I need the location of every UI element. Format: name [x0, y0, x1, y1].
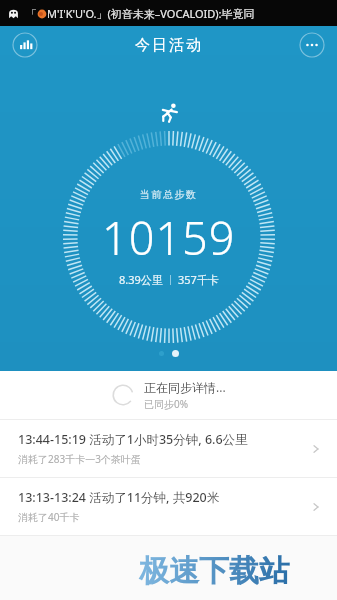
staticText: 10159 [102, 207, 236, 268]
staticText: 「 [26, 7, 37, 21]
staticText: 已同步0% [144, 397, 189, 411]
button[interactable]: 13:44-15:19 活动了1小时35分钟, 6.6公里 [0, 420, 337, 477]
staticText: M'I'K'U'O.」(初音未来–VOCALOID):毕竟同 [47, 6, 255, 21]
staticText: 正在同步详情... [144, 379, 226, 395]
staticText: 357千卡 [178, 272, 219, 287]
button[interactable]: 13:13-13:24 活动了11分钟, 共920米 [0, 478, 337, 535]
staticText: 今日活动 [134, 36, 202, 55]
button[interactable]: Statistics [12, 32, 38, 58]
staticText: 13:44-15:19 活动了1小时35分钟, 6.6公里 [18, 431, 248, 448]
staticText: 极速下载站 [139, 552, 289, 590]
staticText: 消耗了40千卡 [18, 510, 80, 524]
staticText: 8.39公里 [119, 272, 163, 287]
button[interactable]: 正在同步详情... [0, 371, 337, 419]
button[interactable]: More options [299, 32, 325, 58]
staticText: 消耗了283千卡一3个茶叶蛋 [18, 452, 141, 466]
staticText: 当前总步数 [140, 188, 198, 201]
staticText: 13:13-13:24 活动了11分钟, 共920米 [18, 489, 220, 506]
